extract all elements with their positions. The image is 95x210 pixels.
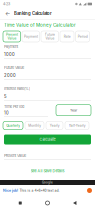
staticText: Quarterly [6,124,20,127]
button[interactable]: Home [40,196,54,210]
staticText: Payment [24,35,38,38]
staticText: Nice job! [3,188,18,193]
staticText: Banking Calculator [14,11,52,16]
staticText: Time Period [4,104,24,109]
button[interactable]: Quarterly [3,121,23,129]
staticText: Future Value [4,65,24,70]
staticText: ← [5,10,10,17]
staticText: Interest Rate(%) [4,86,30,91]
staticText: This is a 4x6x40 text ad. [19,188,59,192]
staticText: See All Save Details [30,169,64,173]
button[interactable]: Yearly [46,121,63,129]
button[interactable]: Future Value [41,31,58,42]
button[interactable]: Rate [60,31,74,42]
staticText: Present Value [6,33,18,40]
staticText: Google [42,181,53,184]
button[interactable]: Period [75,31,89,42]
staticText: Present Value [4,153,26,158]
staticText: Half-Yearly [68,124,85,127]
staticText: Calculate [39,137,55,142]
staticText: Time Value of Money Calculator [4,22,76,28]
staticText: 4:23 [3,2,10,6]
button[interactable]: See All Save Details [4,167,91,175]
button[interactable]: Monthly [25,121,44,129]
button[interactable]: Year [56,105,91,116]
staticText: 1000 [4,52,15,57]
button[interactable]: Nice job! [0,185,95,196]
staticText: Yearly [49,124,59,127]
button[interactable]: Half-Yearly [65,121,89,129]
staticText: 2000 [4,73,16,78]
staticText: Period [77,35,87,38]
button[interactable]: Recents [13,196,27,210]
button[interactable]: Present Value [3,31,20,42]
staticText: 10 [4,110,9,115]
button[interactable]: Calculate [4,134,91,144]
staticText: Year [70,108,77,112]
button[interactable]: Back [68,196,82,210]
staticText: Rate [63,35,70,38]
button[interactable]: Back [4,9,11,17]
staticText: Payment [4,44,18,49]
staticText: 5 [4,94,7,99]
staticText: Monthly [28,124,41,127]
button[interactable]: Payment [22,31,39,42]
staticText: Future Value [45,33,55,40]
